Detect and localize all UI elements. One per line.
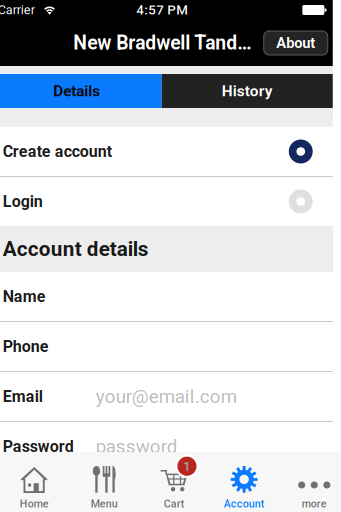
staticText: more bbox=[302, 497, 327, 510]
staticText: your@email.com bbox=[96, 386, 237, 407]
staticText: Login bbox=[3, 192, 43, 211]
button[interactable]: Home bbox=[0, 452, 69, 512]
staticText: Create account bbox=[3, 142, 112, 161]
button[interactable]: History bbox=[162, 74, 333, 108]
button[interactable]: Email bbox=[0, 372, 333, 421]
button[interactable]: Details bbox=[0, 74, 162, 108]
staticText: Email bbox=[3, 387, 43, 406]
button[interactable]: About bbox=[264, 31, 328, 55]
staticText: Account details bbox=[3, 237, 149, 261]
staticText: Password bbox=[3, 437, 74, 456]
button[interactable]: Account bbox=[209, 452, 279, 512]
button[interactable]: Cart bbox=[139, 452, 209, 512]
staticText: 4:57 PM bbox=[136, 2, 188, 18]
button[interactable]: more bbox=[279, 452, 341, 512]
staticText: About bbox=[276, 34, 315, 52]
button[interactable]: Name bbox=[0, 272, 333, 321]
staticText: History bbox=[222, 82, 273, 100]
staticText: password bbox=[96, 436, 178, 457]
staticText: Carrier bbox=[0, 3, 35, 17]
staticText: Home bbox=[20, 497, 49, 510]
staticText: Phone bbox=[3, 337, 49, 356]
button[interactable]: Login bbox=[0, 177, 333, 226]
button[interactable]: Menu bbox=[69, 452, 139, 512]
staticText: 1 bbox=[183, 458, 191, 474]
staticText: Details bbox=[53, 82, 100, 100]
button[interactable]: Create account bbox=[0, 127, 333, 176]
button[interactable]: Phone bbox=[0, 322, 333, 371]
staticText: Menu bbox=[91, 497, 118, 510]
staticText: Account bbox=[224, 497, 265, 510]
staticText: New Bradwell Tand… bbox=[73, 32, 251, 54]
staticText: Cart bbox=[164, 497, 185, 510]
staticText: Name bbox=[3, 287, 46, 306]
button[interactable]: Password bbox=[0, 422, 333, 471]
